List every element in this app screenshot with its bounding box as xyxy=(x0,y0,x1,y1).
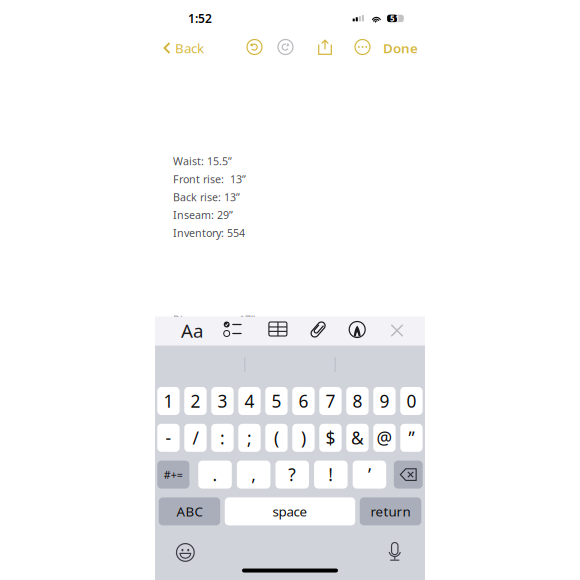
button[interactable]: Attach xyxy=(310,321,327,338)
button[interactable]: & xyxy=(346,424,369,452)
staticText: ? xyxy=(288,463,296,486)
button[interactable]: Dictate xyxy=(388,542,401,562)
button[interactable]: ! xyxy=(314,461,348,489)
button[interactable]: More xyxy=(352,37,372,57)
staticText: Inventory: 554 xyxy=(173,226,245,240)
button[interactable]: ABC xyxy=(159,497,220,525)
button[interactable]: Delete xyxy=(394,461,423,489)
button[interactable]: : xyxy=(211,424,234,452)
button[interactable]: 6 xyxy=(292,387,315,415)
button[interactable]: ” xyxy=(400,424,423,452)
button[interactable]: Back xyxy=(163,35,219,61)
button[interactable]: ) xyxy=(292,424,315,452)
staticText: Inseam: 29” xyxy=(173,208,233,222)
button[interactable]: 0 xyxy=(400,387,423,415)
staticText: ABC xyxy=(176,502,202,520)
button[interactable]: ’ xyxy=(353,461,386,489)
staticText: Back xyxy=(175,39,204,57)
staticText: ( xyxy=(274,426,279,449)
staticText: 1 xyxy=(163,389,173,412)
staticText: return xyxy=(371,502,411,520)
staticText: ; xyxy=(247,426,252,449)
button[interactable]: 5 xyxy=(265,387,288,415)
staticText: @ xyxy=(376,426,392,449)
staticText: Aa xyxy=(181,318,203,343)
staticText: ) xyxy=(301,426,306,449)
button[interactable]: Close xyxy=(390,324,403,337)
staticText: & xyxy=(351,426,364,449)
staticText: Front rise: 13” xyxy=(173,172,246,186)
staticText: : xyxy=(220,426,225,449)
staticText: - xyxy=(165,426,171,449)
button[interactable]: ( xyxy=(265,424,288,452)
button[interactable]: - xyxy=(157,424,180,452)
button[interactable]: Emoji xyxy=(176,544,194,561)
staticText: 7 xyxy=(325,389,335,412)
staticText: 3 xyxy=(217,389,227,412)
staticText: Waist: 15.5” xyxy=(173,154,232,168)
button[interactable]: , xyxy=(237,461,270,489)
button[interactable]: 9 xyxy=(373,387,396,415)
button[interactable]: Undo xyxy=(244,37,264,57)
button[interactable]: ; xyxy=(238,424,261,452)
button[interactable]: 7 xyxy=(319,387,342,415)
button[interactable]: return xyxy=(360,497,421,525)
button[interactable]: Done xyxy=(383,35,425,61)
button[interactable]: 4 xyxy=(238,387,261,415)
button[interactable]: @ xyxy=(373,424,396,452)
staticText: 0 xyxy=(406,389,416,412)
button[interactable]: Checklist xyxy=(224,321,243,337)
staticText: space xyxy=(272,502,307,520)
staticText: 5 xyxy=(271,389,281,412)
button[interactable]: 1 xyxy=(157,387,180,415)
staticText: Done xyxy=(383,39,418,57)
staticText: 9 xyxy=(379,389,389,412)
staticText: ! xyxy=(328,463,333,486)
staticText: 6 xyxy=(298,389,308,412)
button[interactable]: ? xyxy=(275,461,309,489)
button[interactable]: Table xyxy=(269,322,287,336)
staticText: , xyxy=(251,463,256,486)
button[interactable]: 2 xyxy=(184,387,207,415)
staticText: / xyxy=(192,426,198,449)
button[interactable]: Redo xyxy=(275,37,295,57)
button[interactable]: 8 xyxy=(346,387,369,415)
staticText: 4 xyxy=(244,389,254,412)
staticText: 8 xyxy=(352,389,362,412)
button[interactable]: / xyxy=(184,424,207,452)
staticText: . xyxy=(213,463,218,486)
staticText: ’ xyxy=(368,463,371,486)
staticText: #+= xyxy=(164,467,183,482)
staticText: $ xyxy=(325,426,335,449)
staticText: 1:52 xyxy=(188,10,212,26)
staticText: ” xyxy=(408,426,414,449)
button[interactable]: #+= xyxy=(157,461,189,489)
button[interactable]: $ xyxy=(319,424,342,452)
staticText: Back rise: 13” xyxy=(173,190,240,204)
staticText: 51 xyxy=(390,13,400,24)
button[interactable]: Markup xyxy=(349,321,366,338)
staticText: Rise: approx 17” xyxy=(173,312,255,327)
button[interactable]: Text format xyxy=(180,320,204,340)
staticText: 2 xyxy=(190,389,200,412)
button[interactable]: . xyxy=(198,461,232,489)
button[interactable]: Share xyxy=(318,39,332,56)
button[interactable]: space xyxy=(225,497,355,525)
button[interactable]: 3 xyxy=(211,387,234,415)
